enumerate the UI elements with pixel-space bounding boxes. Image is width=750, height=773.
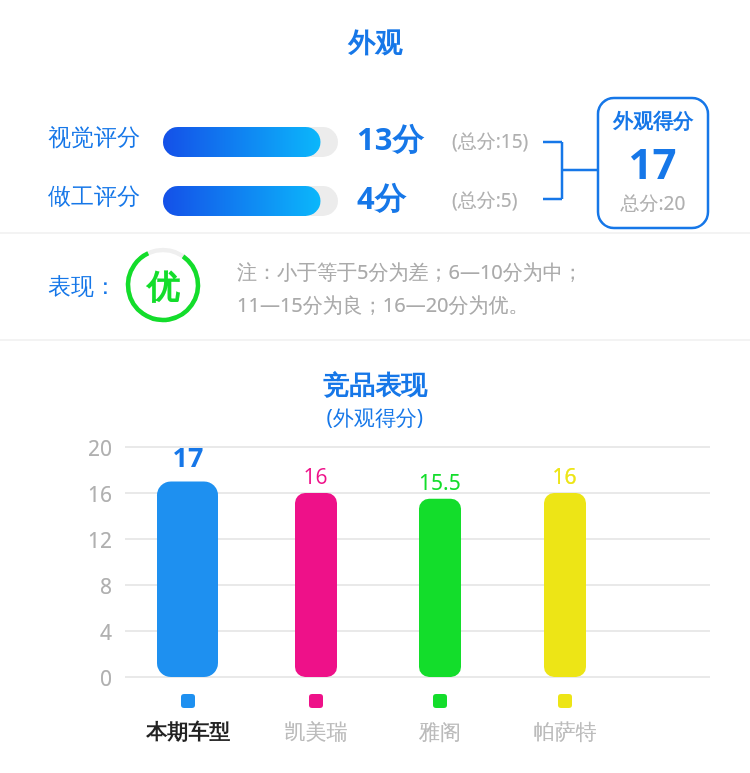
button[interactable]: 外观评分详情 (0, 0, 750, 773)
